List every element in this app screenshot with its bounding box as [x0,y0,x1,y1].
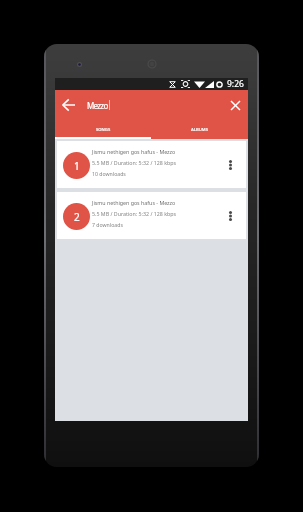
staticText: 1 [74,159,80,173]
staticText: Mezzo [87,100,108,111]
button[interactable]: More options [224,192,237,239]
button[interactable]: 1 [57,141,246,188]
staticText: 7 downloads [92,221,123,228]
staticText: ALBUMS [191,127,208,133]
staticText: 5.5 MB / Duration: 5:32 / 128 kbps [92,210,177,217]
staticText: 9:26 [227,78,244,90]
staticText: SONGS [96,127,111,133]
button[interactable]: SONGS [55,120,151,139]
staticText: Jismu nethigen gos hafus - Mezzo [92,199,176,206]
button[interactable]: 2 [57,192,246,239]
staticText: 2 [74,210,80,224]
button[interactable]: More options [224,141,237,188]
staticText: 10 downloads [92,170,126,177]
staticText: 5.5 MB / Duration: 5:32 / 128 kbps [92,159,177,166]
button[interactable]: Clear search [227,97,243,113]
button[interactable]: Back [60,97,76,113]
button[interactable]: ALBUMS [151,120,248,139]
staticText: Jismu nethigen gos hafus - Mezzo [92,148,176,155]
